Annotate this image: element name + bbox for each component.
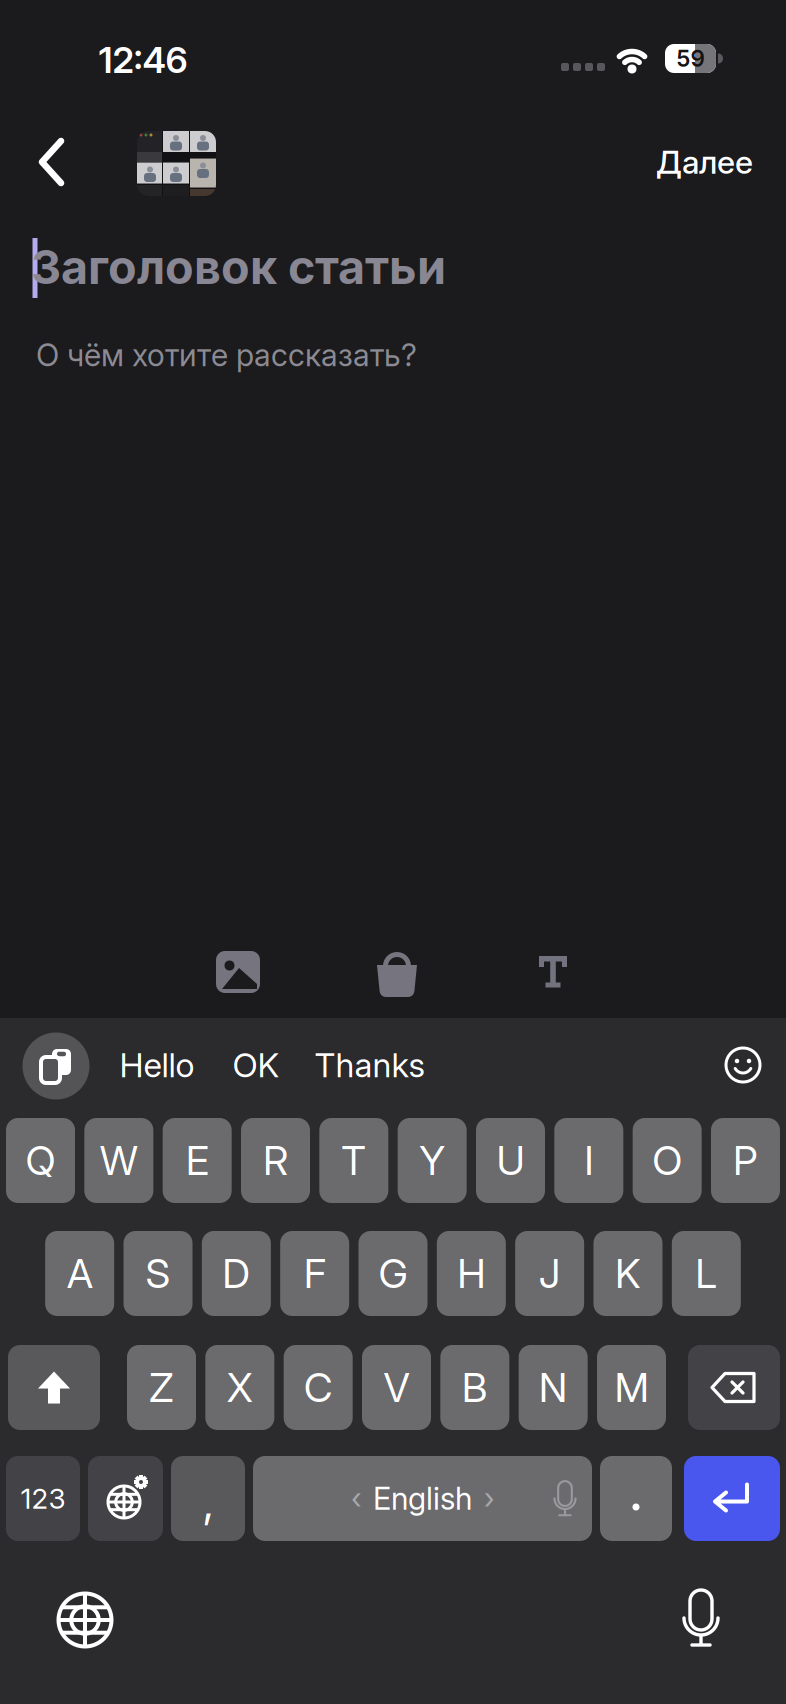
button[interactable]: Q [6, 1118, 75, 1203]
button[interactable]: S [123, 1231, 192, 1316]
staticText: W [100, 1137, 138, 1184]
staticText: K [615, 1250, 641, 1297]
staticText: , [202, 1477, 214, 1527]
button[interactable]: Delete [688, 1345, 780, 1430]
staticText: Далее [656, 143, 753, 181]
button[interactable]: Dictate [681, 1588, 721, 1648]
staticText: S [145, 1250, 170, 1297]
button[interactable]: A [45, 1231, 114, 1316]
button[interactable]: Emoji [726, 1048, 760, 1082]
button[interactable]: D [202, 1231, 271, 1316]
staticText: Thanks [314, 1045, 425, 1085]
staticText: T [341, 1137, 366, 1184]
staticText: › [484, 1481, 494, 1516]
staticText: X [227, 1364, 253, 1411]
button[interactable]: Add product [374, 949, 420, 997]
staticText: L [695, 1250, 717, 1297]
button[interactable]: Next keyboard [57, 1592, 112, 1647]
button[interactable]: Shift [8, 1345, 100, 1430]
button[interactable]: Text style [539, 956, 567, 988]
button[interactable]: W [84, 1118, 153, 1203]
button[interactable]: U [476, 1118, 545, 1203]
button[interactable]: B [440, 1345, 509, 1430]
button[interactable]: Y [398, 1118, 467, 1203]
button[interactable]: Z [127, 1345, 196, 1430]
staticText: Q [25, 1137, 55, 1184]
staticText: I [584, 1137, 593, 1184]
button[interactable]: R [241, 1118, 310, 1203]
staticText: ‹ [351, 1481, 361, 1516]
button[interactable]: L [672, 1231, 741, 1316]
staticText: English [373, 1480, 472, 1517]
staticText: 123 [20, 1482, 65, 1515]
staticText: D [222, 1250, 250, 1297]
staticText: О чём хотите рассказать? [36, 337, 417, 373]
staticText: A [67, 1250, 93, 1297]
button[interactable]: C [284, 1345, 353, 1430]
button[interactable]: V [362, 1345, 431, 1430]
button[interactable]: Comma [171, 1456, 245, 1541]
button[interactable]: Article cover [137, 131, 216, 196]
button[interactable]: X [205, 1345, 274, 1430]
button[interactable]: T [319, 1118, 388, 1203]
staticText: B [462, 1364, 488, 1411]
button[interactable]: P [711, 1118, 780, 1203]
button[interactable]: F [280, 1231, 349, 1316]
staticText: C [304, 1364, 333, 1411]
staticText: OK [232, 1045, 279, 1085]
staticText: N [539, 1364, 568, 1411]
staticText: G [378, 1250, 407, 1297]
button[interactable]: Hello [119, 1045, 194, 1085]
staticText: F [304, 1250, 326, 1297]
staticText: M [614, 1364, 648, 1411]
button[interactable]: Clipboard [22, 1032, 89, 1099]
staticText: Заголовок статьи [31, 239, 446, 295]
button[interactable]: OK [232, 1045, 279, 1085]
staticText: P [733, 1137, 758, 1184]
staticText: H [457, 1250, 485, 1297]
button[interactable]: 123 [6, 1456, 80, 1541]
button[interactable]: Period [600, 1456, 672, 1541]
button[interactable]: Back [39, 138, 65, 186]
button[interactable]: J [515, 1231, 584, 1316]
staticText: J [539, 1250, 561, 1297]
button[interactable]: M [597, 1345, 666, 1430]
button[interactable]: G [358, 1231, 427, 1316]
staticText: U [496, 1137, 524, 1184]
button[interactable]: N [519, 1345, 588, 1430]
staticText: 12:46 [98, 39, 187, 81]
button[interactable]: I [554, 1118, 623, 1203]
button[interactable]: H [437, 1231, 506, 1316]
staticText: 59 [676, 45, 704, 72]
staticText: Z [149, 1364, 174, 1411]
staticText: Hello [119, 1045, 194, 1085]
button[interactable]: Return [684, 1456, 780, 1541]
button[interactable]: E [163, 1118, 232, 1203]
button[interactable]: O [633, 1118, 702, 1203]
staticText: Y [419, 1137, 445, 1184]
staticText: R [263, 1137, 288, 1184]
staticText: V [383, 1364, 409, 1411]
button[interactable]: Space, English [253, 1456, 592, 1541]
button[interactable]: Thanks [314, 1045, 425, 1085]
staticText: E [186, 1137, 209, 1184]
staticText: O [652, 1137, 682, 1184]
button[interactable]: K [593, 1231, 662, 1316]
button[interactable]: Keyboard settings [88, 1456, 163, 1541]
button[interactable]: Add image [216, 951, 260, 993]
button[interactable]: Далее [593, 143, 753, 181]
